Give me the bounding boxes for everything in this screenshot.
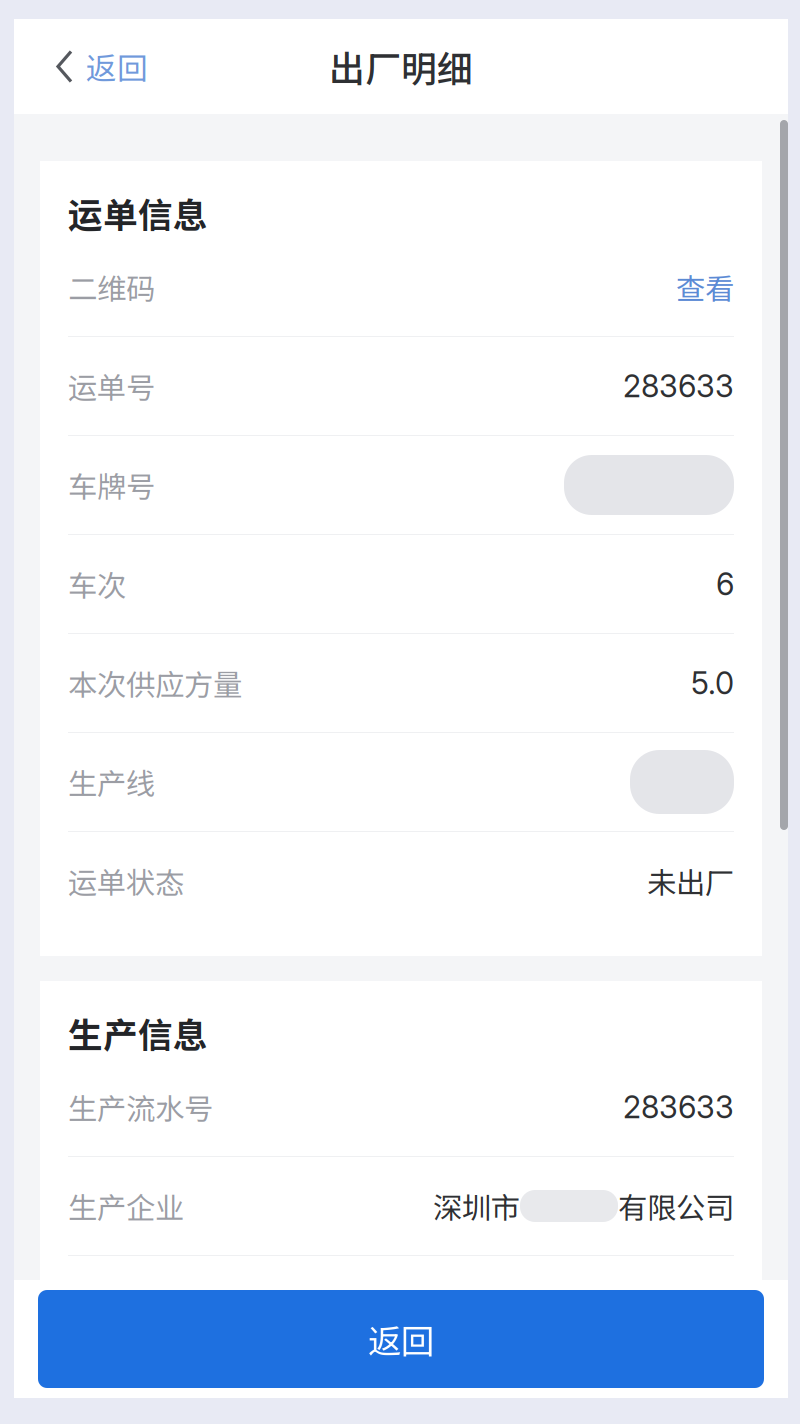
staticText: 运单号	[68, 365, 155, 407]
button[interactable]: 返回	[38, 1290, 764, 1388]
staticText: 283633	[623, 1088, 734, 1125]
staticText: 本次供应方量	[68, 662, 242, 704]
staticText: 车次	[68, 563, 126, 605]
staticText: 生产企业	[68, 1185, 184, 1227]
staticText: 6	[716, 565, 734, 602]
staticText: 有限公司	[618, 1185, 734, 1227]
staticText: 二维码	[68, 266, 155, 308]
staticText: 运单信息	[68, 188, 208, 238]
staticText: 生产线	[68, 761, 155, 803]
button[interactable]: 返回	[14, 19, 172, 114]
staticText: 5.0	[691, 664, 734, 701]
staticText: 查看	[676, 266, 734, 308]
staticText: 283633	[623, 367, 734, 404]
staticText: 出厂明细	[329, 40, 473, 92]
staticText: 返回	[86, 44, 148, 89]
staticText: 返回	[368, 1315, 434, 1363]
staticText: 生产流水号	[68, 1086, 213, 1128]
staticText: 运单状态	[68, 860, 184, 902]
staticText: 车牌号	[68, 464, 155, 506]
staticText: 生产信息	[68, 1008, 208, 1058]
staticText: 未出厂	[647, 860, 734, 902]
staticText: 深圳市	[433, 1185, 520, 1227]
